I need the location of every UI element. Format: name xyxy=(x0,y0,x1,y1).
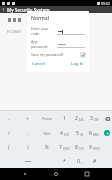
staticText: - xyxy=(8,116,10,122)
staticText: 4 xyxy=(60,130,63,137)
button[interactable]: ) xyxy=(18,140,37,154)
button[interactable]: Cancel xyxy=(31,60,47,68)
button[interactable]: Save password xyxy=(81,53,85,57)
staticText: JKL xyxy=(80,133,84,137)
button[interactable]: Log In xyxy=(70,60,85,68)
button[interactable]: 9 xyxy=(87,140,102,154)
button[interactable]: 6 xyxy=(87,126,102,140)
staticText: 6 xyxy=(89,130,92,137)
staticText: WXYZ xyxy=(93,147,100,151)
staticText: MNO xyxy=(93,133,100,137)
button[interactable]: 5 xyxy=(72,126,87,140)
button[interactable]: 4 xyxy=(56,126,72,140)
staticText: 7 xyxy=(59,144,62,151)
button[interactable]: + xyxy=(18,111,37,126)
button[interactable]: Hide keyboard xyxy=(19,168,31,180)
button[interactable]: Backspace xyxy=(102,111,112,126)
staticText: * xyxy=(63,158,66,165)
staticText: N xyxy=(45,144,49,150)
button[interactable]: 1 xyxy=(56,111,72,126)
staticText: ABC xyxy=(79,118,84,122)
button[interactable]: * xyxy=(56,154,72,168)
staticText: 5 xyxy=(76,130,79,137)
staticText: + xyxy=(81,161,83,165)
button[interactable]: # xyxy=(87,154,102,168)
staticText: 09:02 xyxy=(101,1,110,6)
button[interactable]: Home xyxy=(50,168,62,180)
staticText: Log In xyxy=(71,61,84,67)
button[interactable]: 2 xyxy=(72,111,87,126)
button[interactable] xyxy=(57,28,85,35)
staticText: # xyxy=(93,158,97,165)
other: Backspace xyxy=(105,117,110,121)
staticText: + xyxy=(26,116,29,122)
button[interactable]: 3 xyxy=(87,111,102,126)
staticText: HOME xyxy=(7,29,22,34)
button[interactable]: Wait xyxy=(37,126,56,140)
staticText: 2 xyxy=(75,115,78,122)
button[interactable]: 0 xyxy=(72,154,87,168)
button[interactable]: N xyxy=(37,140,56,154)
button[interactable]: Enter xyxy=(102,126,112,140)
button[interactable]: More options xyxy=(6,17,23,23)
staticText: Cancel xyxy=(32,61,46,67)
staticText: Wait xyxy=(43,131,51,136)
staticText: PQRS xyxy=(63,147,70,151)
staticText: TUV xyxy=(79,147,84,151)
button[interactable]: 8 xyxy=(72,140,87,154)
staticText: App password: xyxy=(31,39,55,49)
button[interactable]: Back xyxy=(0,6,7,13)
staticText: 0 xyxy=(77,158,80,165)
button[interactable]: Recent apps xyxy=(81,168,93,180)
staticText: Pause xyxy=(42,116,52,121)
staticText: GHI xyxy=(64,133,69,137)
button[interactable]: / xyxy=(0,126,18,140)
button[interactable]: 7 xyxy=(56,140,72,154)
staticText: 1 xyxy=(63,115,66,122)
staticText: 3 xyxy=(90,115,93,122)
staticText: Enter your code: xyxy=(31,26,55,36)
staticText: DEF xyxy=(94,118,99,122)
button[interactable] xyxy=(14,154,42,168)
staticText: ) xyxy=(27,144,29,150)
button[interactable]: Save my password? xyxy=(31,52,64,57)
button[interactable]: ( xyxy=(0,140,18,154)
other: Enter xyxy=(104,130,110,136)
button[interactable]: Pause xyxy=(37,111,56,126)
staticText: , xyxy=(27,130,29,136)
staticText: Normal xyxy=(31,15,49,22)
staticText: 8 xyxy=(75,144,78,151)
staticText: My Security System xyxy=(7,7,50,13)
staticText: 9 xyxy=(89,144,92,151)
button[interactable] xyxy=(57,41,85,48)
staticText: ( xyxy=(8,144,10,150)
staticText: / xyxy=(8,130,10,136)
